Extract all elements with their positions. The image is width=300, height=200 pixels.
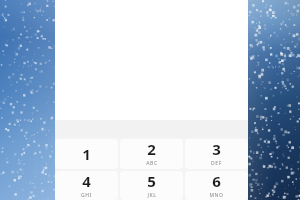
staticText: 2 <box>147 139 156 159</box>
staticText: JKL <box>147 192 157 199</box>
staticText: 3 <box>212 139 221 159</box>
staticText: ABC <box>146 160 158 167</box>
staticText: GHI <box>81 192 92 199</box>
staticText: 5 <box>147 171 156 191</box>
button[interactable]: 4 <box>55 171 118 200</box>
staticText: 1 <box>82 144 91 164</box>
staticText: MNO <box>209 192 224 199</box>
staticText: DEF <box>211 160 222 167</box>
button[interactable]: 2 <box>120 139 183 169</box>
button[interactable]: 6 <box>185 171 248 200</box>
button[interactable]: 3 <box>185 139 248 169</box>
button[interactable]: 5 <box>120 171 183 200</box>
button[interactable]: 1 <box>55 139 118 169</box>
staticText: 6 <box>212 171 221 191</box>
staticText: 4 <box>82 171 91 191</box>
